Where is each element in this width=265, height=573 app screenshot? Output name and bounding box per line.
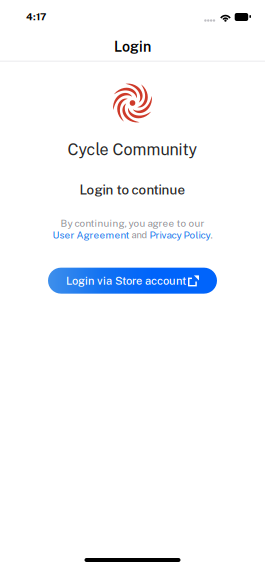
- staticText: Login via Store account: [66, 274, 186, 287]
- staticText: User Agreement: [52, 229, 129, 241]
- button[interactable]: Login via Store account: [48, 268, 217, 294]
- staticText: and: [129, 229, 149, 240]
- staticText: Login: [114, 38, 151, 55]
- staticText: 4:17: [26, 10, 46, 22]
- staticText: Cycle Community: [67, 140, 197, 159]
- staticText: Privacy Policy: [149, 229, 210, 241]
- button[interactable]: Privacy Policy: [149, 229, 210, 241]
- staticText: By continuing, you agree to our: [60, 217, 204, 229]
- staticText: .: [210, 229, 212, 241]
- staticText: Login to continue: [79, 182, 185, 197]
- button[interactable]: User Agreement: [52, 229, 129, 241]
